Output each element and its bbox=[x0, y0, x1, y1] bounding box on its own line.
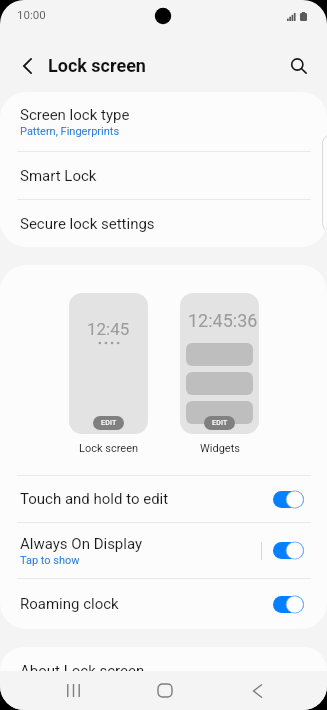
staticText: Smart Lock bbox=[20, 167, 97, 185]
staticText: EDIT bbox=[212, 419, 228, 427]
staticText: Roaming clock bbox=[20, 595, 119, 613]
button[interactable]: Always On Display bbox=[0, 523, 327, 578]
staticText: 12:45 bbox=[87, 319, 130, 339]
button[interactable] bbox=[273, 595, 304, 614]
staticText: Always On Display bbox=[20, 535, 143, 553]
button[interactable]: Search bbox=[279, 46, 319, 86]
staticText: Widgets bbox=[200, 442, 240, 455]
staticText: Tap to show bbox=[20, 554, 80, 567]
button[interactable]: Secure lock settings bbox=[0, 200, 327, 247]
button[interactable] bbox=[273, 490, 304, 509]
staticText: About Lock screen bbox=[20, 662, 145, 680]
button[interactable]: EDIT bbox=[93, 416, 124, 430]
staticText: Touch and hold to edit bbox=[20, 490, 169, 508]
button[interactable]: Navigate up bbox=[6, 45, 48, 87]
staticText: Secure lock settings bbox=[20, 215, 155, 233]
staticText: 12:45:36 bbox=[188, 310, 258, 331]
staticText: Lock screen bbox=[48, 55, 146, 76]
button[interactable]: Back bbox=[234, 671, 280, 710]
button[interactable]: Smart Lock bbox=[0, 152, 327, 199]
button[interactable]: EDIT bbox=[204, 416, 235, 430]
button[interactable] bbox=[273, 541, 304, 560]
button[interactable]: Recent apps bbox=[50, 671, 96, 710]
button[interactable]: 12:45:36 bbox=[180, 293, 259, 434]
staticText: EDIT bbox=[101, 419, 117, 427]
staticText: Lock screen bbox=[79, 442, 139, 455]
button[interactable]: About Lock screen bbox=[0, 647, 327, 694]
staticText: Pattern, Fingerprints bbox=[20, 125, 120, 138]
button[interactable]: Roaming clock bbox=[0, 579, 327, 629]
button[interactable]: 12:45 bbox=[69, 293, 148, 434]
button[interactable]: Touch and hold to edit bbox=[0, 476, 327, 522]
button[interactable]: Home bbox=[142, 671, 188, 710]
staticText: Screen lock type bbox=[20, 106, 130, 124]
button[interactable]: Screen lock type bbox=[0, 92, 327, 151]
staticText: 10:00 bbox=[17, 8, 46, 21]
